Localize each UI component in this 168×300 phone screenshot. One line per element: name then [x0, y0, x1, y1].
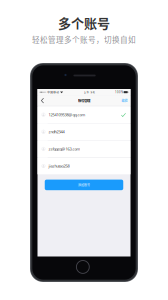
- staticText: 多个账号: [58, 13, 110, 32]
- button[interactable]: Back: [37, 96, 47, 105]
- staticText: zsfggeg@163.com: [48, 146, 80, 151]
- button[interactable]: zndh2344: [37, 123, 130, 140]
- staticText: 添加账号: [78, 183, 90, 187]
- staticText: 编辑: [121, 98, 127, 103]
- staticText: 上午 9:41: [84, 90, 95, 94]
- button[interactable]: 编辑: [118, 97, 130, 104]
- staticText: 100%: [115, 90, 123, 94]
- button[interactable]: jiazhutao258: [37, 158, 130, 174]
- staticText: zndh2344: [48, 129, 64, 134]
- staticText: jiazhutao258: [48, 163, 69, 169]
- staticText: 轻松管理多个账号，切换自如: [32, 34, 136, 45]
- staticText: 中国移动: [46, 90, 59, 94]
- staticText: 账号管理: [78, 98, 90, 103]
- staticText: 1254109538@qq.com: [48, 112, 85, 117]
- button[interactable]: zsfggeg@163.com: [37, 140, 130, 157]
- button[interactable]: 1254109538@qq.com: [37, 106, 130, 123]
- button[interactable]: 添加账号: [45, 180, 123, 190]
